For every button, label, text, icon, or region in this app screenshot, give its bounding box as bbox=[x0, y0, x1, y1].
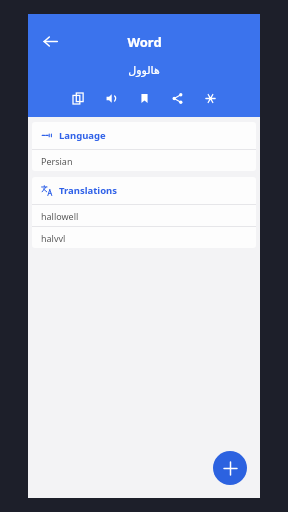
staticText: Persian bbox=[41, 155, 73, 167]
staticText: Word bbox=[127, 33, 162, 51]
button[interactable]: Language bbox=[32, 122, 256, 149]
button[interactable]: Back bbox=[36, 27, 64, 55]
staticText: halvvl bbox=[41, 232, 66, 244]
button[interactable]: Share bbox=[166, 87, 188, 109]
staticText: Language bbox=[59, 129, 106, 142]
button[interactable]: Translations bbox=[32, 177, 256, 204]
button[interactable]: halvvl bbox=[32, 227, 256, 248]
button[interactable]: Bookmark bbox=[133, 87, 155, 109]
button[interactable]: Add bbox=[213, 451, 247, 485]
staticText: hallowell bbox=[41, 210, 79, 222]
button[interactable]: Speak bbox=[100, 87, 122, 109]
button[interactable]: hallowell bbox=[32, 205, 256, 226]
button[interactable]: Persian bbox=[32, 150, 256, 171]
staticText: Translations bbox=[59, 184, 118, 197]
button[interactable]: Favorite bbox=[199, 87, 221, 109]
button[interactable]: Copy bbox=[67, 87, 89, 109]
staticText: هالوول bbox=[128, 64, 160, 77]
